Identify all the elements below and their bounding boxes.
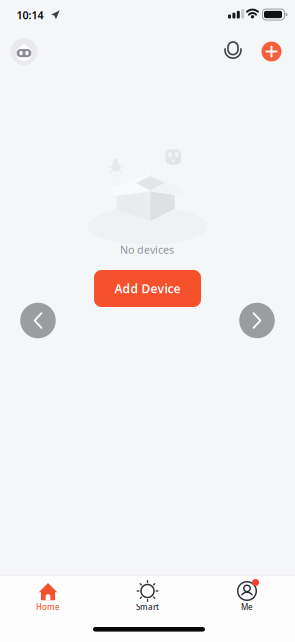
button[interactable]: Add Device <box>94 270 201 307</box>
staticText: Me <box>241 602 253 612</box>
button[interactable]: Next home <box>239 303 275 338</box>
button[interactable]: Me <box>207 574 287 624</box>
button[interactable]: Home <box>8 574 88 624</box>
button[interactable]: Smart <box>107 574 187 624</box>
button[interactable]: Family / room settings <box>10 37 38 65</box>
staticText: Home <box>36 602 60 612</box>
button[interactable]: Previous home <box>20 303 56 338</box>
staticText: 10:14 <box>16 8 43 22</box>
staticText: No devices <box>120 242 174 257</box>
button[interactable]: Voice assistant <box>220 39 246 65</box>
staticText: Smart <box>136 602 159 612</box>
staticText: Add Device <box>114 280 180 296</box>
button[interactable]: Add <box>260 40 282 62</box>
